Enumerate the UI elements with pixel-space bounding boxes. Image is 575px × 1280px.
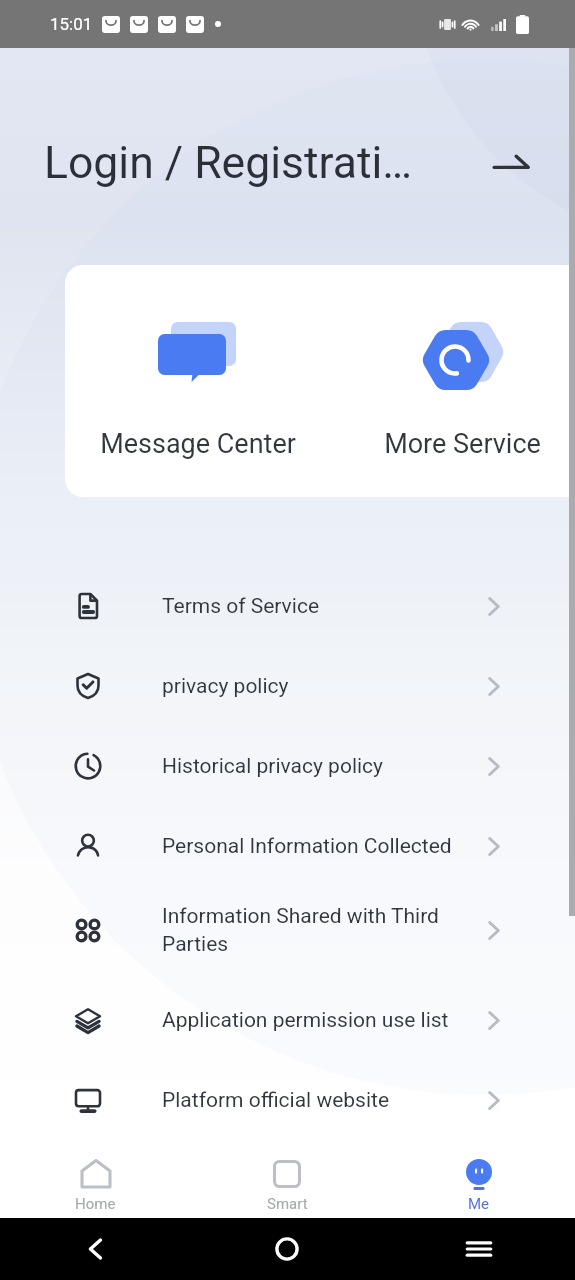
button[interactable]: More Service [330,265,575,497]
staticText: Information Shared with Third Parties [162,904,466,956]
staticText: Message Center [100,428,296,460]
button[interactable]: Me [383,1153,575,1218]
button[interactable]: Home [191,1218,383,1280]
staticText: Me [468,1195,490,1213]
staticText: Personal Information Collected [162,834,466,859]
staticText: More Service [384,428,541,460]
button[interactable]: Back [0,1218,191,1280]
button[interactable]: Home [0,1153,191,1218]
button[interactable]: Recent apps [383,1218,575,1280]
button[interactable]: Go to login [484,138,538,192]
staticText: Application permission use list [162,1008,466,1033]
button[interactable]: Platform official website [0,1060,575,1140]
staticText: Smart [267,1195,308,1213]
button[interactable]: Application permission use list [0,980,575,1060]
staticText: Login / Registrati… [44,137,413,189]
button[interactable]: Historical privacy policy [0,726,575,806]
staticText: Platform official website [162,1088,466,1113]
button[interactable]: Smart [191,1153,383,1218]
staticText: privacy policy [162,674,466,699]
staticText: Historical privacy policy [162,754,466,779]
button[interactable]: privacy policy [0,646,575,726]
button[interactable]: Login / Registrati… [44,132,464,194]
button[interactable]: Terms of Service [0,566,575,646]
staticText: Terms of Service [162,594,466,619]
staticText: 15:01 [50,14,93,34]
button[interactable]: Personal Information Collected [0,806,575,886]
button[interactable]: Information Shared with Third Parties [0,886,575,974]
staticText: Home [75,1195,116,1213]
button[interactable]: Message Center [65,265,330,497]
